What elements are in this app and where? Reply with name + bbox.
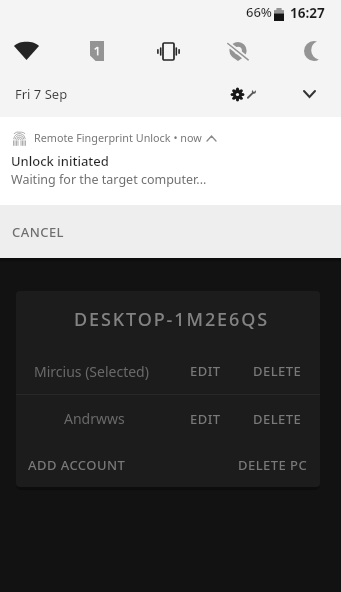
staticText: EDIT — [190, 410, 221, 428]
staticText: Andrwws — [64, 409, 125, 428]
staticText: CANCEL — [12, 223, 64, 241]
staticText: Unlock initiated — [11, 152, 109, 170]
button[interactable]: Vibrate — [142, 29, 194, 73]
staticText: Mircius (Selected) — [34, 362, 149, 381]
button[interactable]: CANCEL — [0, 205, 341, 258]
staticText: ADD ACCOUNT — [28, 456, 126, 474]
staticText: DELETE PC — [238, 456, 308, 474]
staticText: Waiting for the target computer... — [11, 171, 207, 188]
staticText: DESKTOP-1M2E6QS — [74, 307, 270, 332]
button[interactable]: Settings — [222, 79, 262, 109]
staticText: Remote Fingerprint Unlock • now — [34, 130, 202, 145]
button[interactable]: ADD ACCOUNT — [16, 446, 136, 484]
staticText: 66% — [246, 3, 272, 21]
button[interactable]: DELETE — [243, 352, 320, 390]
button[interactable]: DELETE PC — [228, 446, 320, 484]
staticText: DELETE — [253, 362, 302, 380]
staticText: EDIT — [190, 362, 221, 380]
button[interactable]: SIM 1 — [71, 29, 123, 73]
button[interactable]: EDIT — [166, 352, 231, 390]
button[interactable]: Dark theme — [284, 29, 336, 73]
button[interactable]: Wi-Fi — [0, 29, 52, 73]
button[interactable]: EDIT — [166, 400, 231, 438]
button[interactable]: Expand — [295, 80, 323, 108]
button[interactable]: Location off — [212, 29, 264, 73]
staticText: DELETE — [253, 410, 302, 428]
staticText: Fri 7 Sep — [15, 85, 68, 103]
button[interactable]: DELETE — [243, 400, 320, 438]
staticText: 16:27 — [290, 4, 325, 22]
